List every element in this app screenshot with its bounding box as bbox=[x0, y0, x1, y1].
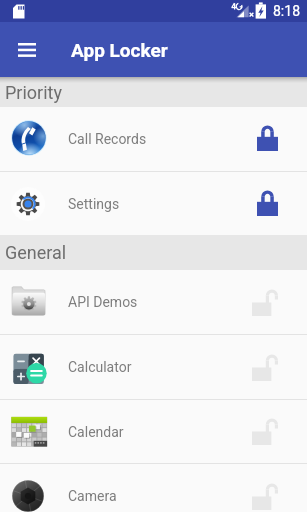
staticText: Calendar bbox=[68, 424, 124, 440]
staticText: 8:18 bbox=[273, 3, 300, 19]
staticText: Settings bbox=[68, 196, 120, 212]
staticText: App Locker bbox=[71, 39, 168, 61]
button[interactable]: API Demos bbox=[0, 270, 307, 334]
staticText: API Demos bbox=[68, 294, 138, 310]
button[interactable]: Calendar bbox=[0, 400, 307, 463]
staticText: Calculator bbox=[68, 359, 132, 375]
button[interactable]: Call Records bbox=[0, 107, 307, 171]
button[interactable]: Settings bbox=[0, 172, 307, 235]
button[interactable]: Camera bbox=[0, 464, 307, 512]
button[interactable]: Open navigation menu bbox=[6, 29, 47, 70]
staticText: Camera bbox=[68, 488, 117, 504]
staticText: Call Records bbox=[68, 131, 147, 147]
staticText: Priority bbox=[5, 82, 62, 103]
button[interactable]: Calculator bbox=[0, 335, 307, 399]
staticText: General bbox=[5, 242, 67, 263]
